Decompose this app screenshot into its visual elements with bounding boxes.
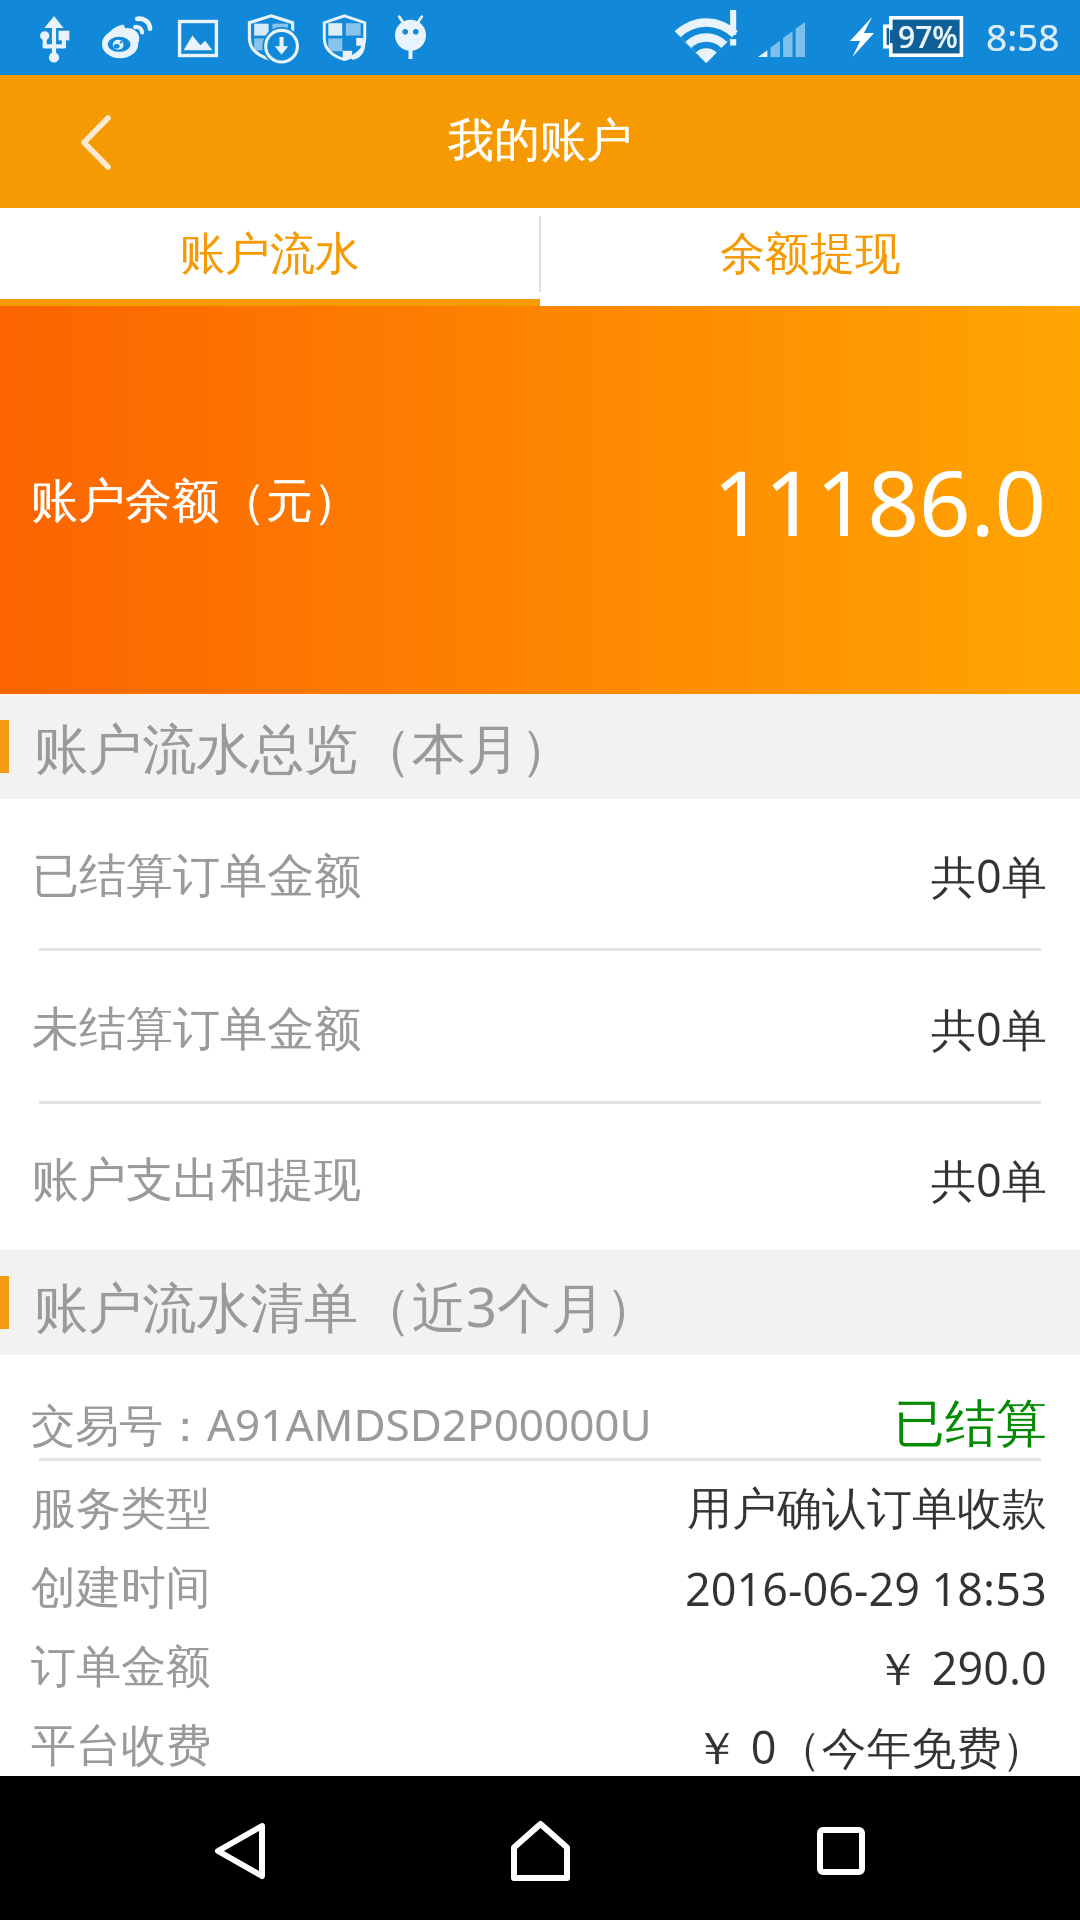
button[interactable]: 已结算订单金额 — [0, 799, 1080, 948]
staticText: 已结算订单金额 — [32, 847, 361, 906]
staticText: 账户流水 — [180, 226, 360, 283]
staticText: 用户确认订单收款 — [687, 1481, 1047, 1538]
button[interactable]: Recent apps — [751, 1776, 931, 1920]
staticText: 平台收费 — [31, 1718, 211, 1775]
button[interactable]: 账户支出和提现 — [0, 1104, 1080, 1250]
staticText: 账户流水总览（本月） — [34, 716, 574, 784]
staticText: 共0单 — [931, 845, 1047, 906]
staticText: 服务类型 — [31, 1481, 211, 1538]
staticText: 2016-06-29 18:53 — [685, 1558, 1047, 1619]
staticText: 共0单 — [931, 998, 1047, 1059]
staticText: 账户余额（元） — [31, 472, 360, 531]
staticText: 已结算 — [894, 1392, 1047, 1456]
button[interactable]: 余额提现 — [540, 208, 1080, 306]
staticText: 订单金额 — [31, 1639, 211, 1696]
button[interactable]: Home — [450, 1776, 630, 1920]
staticText: 未结算订单金额 — [32, 1000, 361, 1059]
staticText: 我的账户 — [448, 112, 632, 170]
button[interactable]: 未结算订单金额 — [0, 951, 1080, 1101]
staticText: 账户流水清单（近3个月） — [34, 1269, 659, 1343]
button[interactable]: Back — [150, 1776, 330, 1920]
button[interactable]: Back — [0, 75, 165, 208]
staticText: 11186.0 — [713, 440, 1046, 563]
staticText: 8:58 — [986, 11, 1060, 61]
staticText: ￥ 290.0 — [875, 1637, 1047, 1698]
button[interactable]: 交易号：A91AMDSD2P00000U — [0, 1355, 1080, 1786]
button[interactable]: 账户流水 — [0, 208, 540, 306]
staticText: 共0单 — [931, 1149, 1047, 1210]
staticText: 余额提现 — [720, 226, 900, 283]
staticText: 交易号：A91AMDSD2P00000U — [31, 1394, 652, 1454]
staticText: 创建时间 — [31, 1560, 211, 1617]
staticText: ￥ 0（今年免费） — [694, 1716, 1047, 1777]
staticText: 账户支出和提现 — [32, 1151, 361, 1210]
staticText: 97% — [898, 16, 958, 57]
